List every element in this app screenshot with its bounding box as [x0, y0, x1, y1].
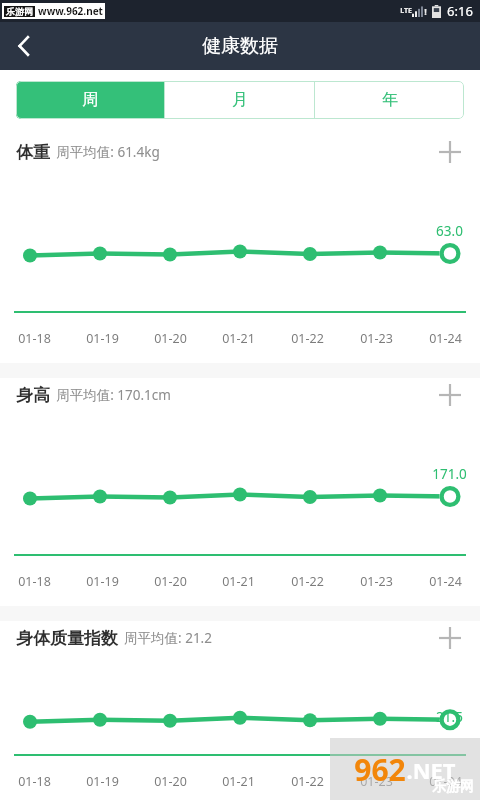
staticText: 01-23: [360, 573, 393, 590]
staticText: 周平均值: 21.2: [124, 629, 212, 647]
staticText: 01-22: [291, 330, 324, 347]
staticText: 周: [82, 90, 98, 110]
button[interactable]: 年: [315, 81, 464, 119]
staticText: 01-20: [154, 573, 187, 590]
staticText: 01-20: [154, 330, 187, 347]
button[interactable]: Add 体重 record: [428, 135, 472, 169]
staticText: 6:16: [447, 2, 473, 20]
staticText: 年: [382, 90, 398, 110]
staticText: 01-19: [86, 573, 119, 590]
button[interactable]: 月: [165, 81, 314, 119]
staticText: 01-18: [18, 773, 51, 790]
staticText: 01-20: [154, 773, 187, 790]
staticText: 月: [232, 90, 248, 110]
staticText: www.962.net: [38, 4, 103, 18]
staticText: 01-22: [291, 573, 324, 590]
staticText: !: [424, 5, 427, 17]
staticText: 01-18: [18, 573, 51, 590]
staticText: 171.0: [432, 465, 467, 483]
button[interactable]: Add 身体质量指数 record: [428, 621, 472, 655]
staticText: 01-24: [429, 773, 462, 790]
button[interactable]: 周: [16, 81, 164, 119]
button[interactable]: Back: [0, 22, 48, 70]
staticText: .NET: [406, 755, 456, 785]
staticText: 周平均值: 61.4kg: [56, 143, 160, 161]
staticText: 962: [354, 749, 406, 790]
staticText: 01-21: [222, 330, 255, 347]
staticText: LTE: [400, 6, 412, 16]
staticText: 01-19: [86, 773, 119, 790]
staticText: 01-24: [429, 330, 462, 347]
staticText: 01-22: [291, 773, 324, 790]
staticText: 01-23: [360, 773, 393, 790]
staticText: 01-21: [222, 573, 255, 590]
button[interactable]: Add 身高 record: [428, 378, 472, 412]
staticText: 周平均值: 170.1cm: [56, 386, 171, 404]
staticText: 乐游网: [6, 6, 33, 17]
staticText: 身体质量指数: [16, 628, 118, 649]
staticText: 乐游网: [432, 778, 474, 796]
staticText: 01-23: [360, 330, 393, 347]
staticText: 63.0: [436, 222, 463, 240]
staticText: 01-21: [222, 773, 255, 790]
staticText: 身高: [16, 385, 50, 406]
staticText: 01-19: [86, 330, 119, 347]
staticText: 健康数据: [202, 34, 278, 58]
staticText: 体重: [16, 142, 50, 163]
staticText: 21.5: [436, 708, 463, 726]
staticText: 01-24: [429, 573, 462, 590]
staticText: 01-18: [18, 330, 51, 347]
